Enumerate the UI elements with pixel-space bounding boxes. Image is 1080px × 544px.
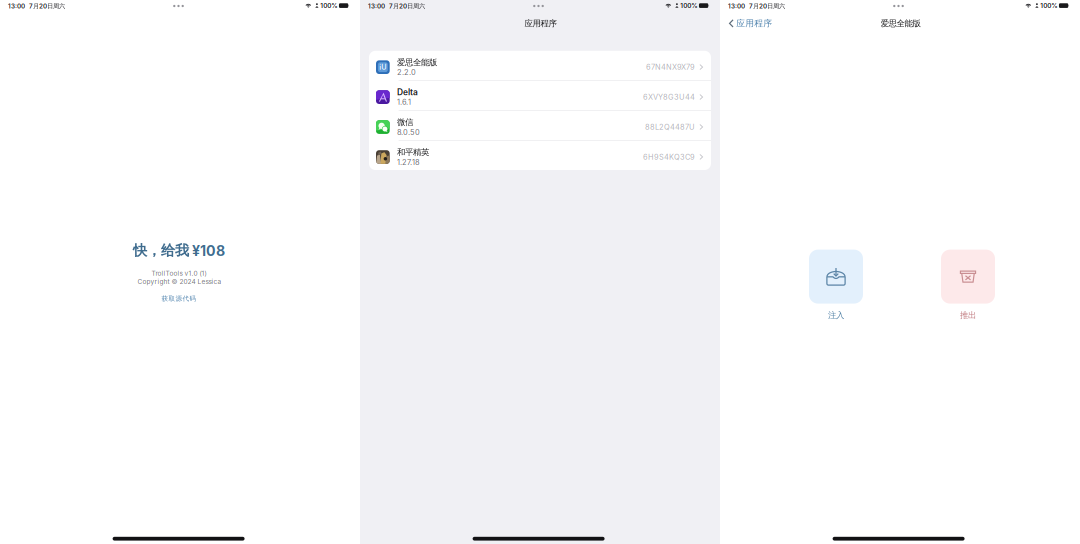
- staticText: 67N4NX9X79: [646, 63, 695, 72]
- staticText: 100%: [680, 2, 697, 9]
- staticText: Copyright © 2024 Lessica: [138, 278, 222, 285]
- staticText: 微信: [397, 117, 413, 128]
- button[interactable]: Delta: [369, 81, 711, 111]
- staticText: TrollTools v1.0 (1): [151, 269, 206, 277]
- button[interactable]: 和平精英: [369, 141, 711, 170]
- staticText: 1.27.18: [397, 158, 420, 167]
- staticText: 应用程序: [524, 18, 556, 29]
- button[interactable]: 应用程序: [727, 15, 774, 32]
- button[interactable]: 获取源代码: [157, 292, 200, 305]
- staticText: Delta: [397, 87, 418, 97]
- staticText: 13:00 7月20日周六: [728, 2, 785, 10]
- button[interactable]: 微信: [369, 111, 711, 141]
- staticText: 1.6.1: [397, 98, 411, 107]
- staticText: 爱思全能版: [397, 57, 437, 68]
- staticText: 100%: [320, 2, 337, 9]
- staticText: 推出: [960, 310, 976, 320]
- button[interactable]: iU: [369, 51, 711, 81]
- staticText: iU: [379, 63, 386, 71]
- staticText: 获取源代码: [161, 294, 196, 303]
- staticText: 2.2.0: [397, 68, 416, 77]
- staticText: 13:00 7月20日周六: [368, 2, 425, 10]
- staticText: 和平精英: [397, 147, 429, 157]
- staticText: 爱思全能版: [880, 18, 920, 29]
- button[interactable]: 推出: [941, 250, 995, 320]
- staticText: 6XVY8G3U44: [643, 92, 695, 101]
- staticText: 88L2Q4487U: [645, 122, 695, 131]
- button[interactable]: 注入: [809, 250, 863, 320]
- staticText: 应用程序: [736, 18, 772, 29]
- staticText: 8.0.50: [397, 128, 420, 137]
- staticText: 13:00 7月20日周六: [8, 2, 65, 10]
- staticText: 注入: [828, 310, 844, 320]
- staticText: 6H9S4KQ3C9: [643, 152, 695, 161]
- staticText: 100%: [1040, 2, 1057, 9]
- staticText: 快，给我 ¥108: [133, 242, 225, 259]
